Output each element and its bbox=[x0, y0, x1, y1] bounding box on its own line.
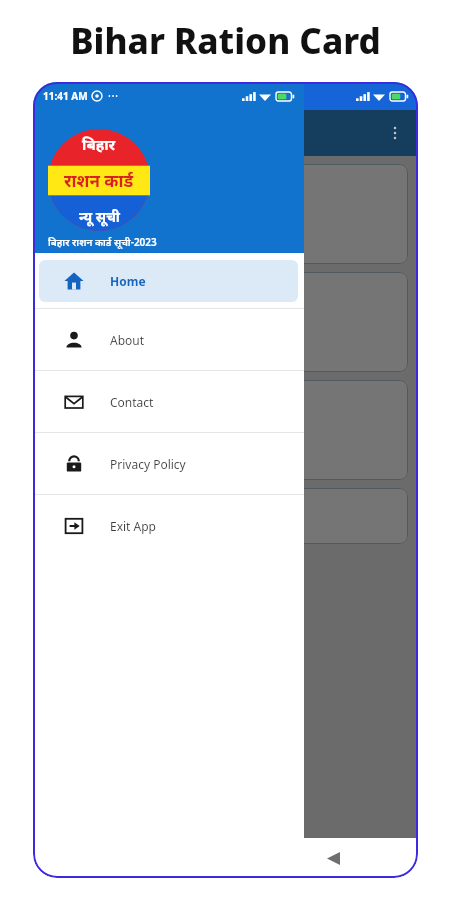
button[interactable]: Home bbox=[204, 838, 248, 878]
staticText: Home bbox=[110, 273, 146, 289]
staticText: Contact bbox=[110, 394, 154, 410]
staticText: Privacy Policy bbox=[110, 456, 186, 472]
button[interactable]: Contact bbox=[33, 371, 304, 432]
staticText: Exit App bbox=[110, 518, 156, 534]
staticText: राशन कार्ड bbox=[64, 169, 134, 192]
button[interactable]: Back bbox=[311, 838, 355, 878]
staticText: About bbox=[110, 332, 145, 348]
button[interactable]: नंबर पर कॉल करें bbox=[43, 272, 408, 372]
button[interactable]: Share App bbox=[43, 380, 408, 480]
staticText: बिहार राशन कार्ड सूची-2023 bbox=[48, 235, 157, 249]
button[interactable]: Exit App bbox=[33, 495, 304, 556]
button[interactable]: Privacy Policy bbox=[33, 433, 304, 494]
button[interactable]: राशन कार्ड न० से खोजें bbox=[43, 164, 408, 264]
button[interactable]: More options bbox=[382, 120, 408, 146]
button[interactable]: Recents bbox=[96, 838, 140, 878]
button[interactable]: About bbox=[33, 309, 304, 370]
staticText: न्यू सूची bbox=[79, 207, 120, 226]
staticText: Bihar Ration Card bbox=[70, 17, 381, 65]
button[interactable]: Home bbox=[39, 260, 298, 302]
staticText: 11:41 AM bbox=[43, 89, 88, 103]
staticText: 11:41 AM bbox=[43, 89, 88, 103]
staticText: बिहार bbox=[82, 134, 116, 154]
button[interactable]: शेयर बटन दबाकर इस एप bbox=[43, 488, 408, 544]
